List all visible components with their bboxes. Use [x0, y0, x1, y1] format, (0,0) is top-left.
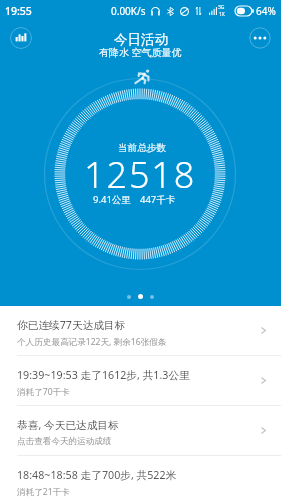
staticText: 9.41公里 [93, 193, 131, 206]
staticText: 19:55 [5, 4, 32, 18]
button[interactable]: 18:48~18:58 走了700步, 共522米 [0, 456, 281, 500]
staticText: 当前总步数 [118, 142, 166, 154]
staticText: 12518 [84, 150, 197, 199]
staticText: 19:39~19:53 走了1612步, 共1.3公里 [17, 368, 190, 383]
staticText: 个人历史最高记录122天, 剩余16张假条 [17, 336, 167, 348]
staticText: 恭喜, 今天已达成目标 [17, 418, 119, 433]
button[interactable]: 19:39~19:53 走了1612步, 共1.3公里 [0, 356, 281, 405]
staticText: 18:48~18:58 走了700步, 共522米 [17, 468, 177, 483]
staticText: 0.00K/s [111, 4, 146, 18]
staticText: 消耗了70千卡 [17, 386, 70, 398]
staticText: 点击查看今天的运动成绩 [17, 436, 112, 447]
staticText: 消耗了21千卡 [17, 486, 70, 498]
button[interactable]: 你已连续77天达成目标 [0, 306, 281, 355]
staticText: 447千卡 [140, 193, 176, 206]
staticText: 今日活动 [114, 31, 168, 48]
button[interactable]: 恭喜, 今天已达成目标 [0, 406, 281, 455]
staticText: 3G [218, 4, 225, 11]
button[interactable]: Statistics [10, 27, 32, 49]
staticText: 1X [219, 11, 225, 18]
staticText: 有降水 空气质量优 [99, 45, 182, 59]
staticText: 你已连续77天达成目标 [17, 318, 126, 333]
staticText: 64% [256, 4, 276, 18]
button[interactable]: More options [249, 27, 271, 49]
